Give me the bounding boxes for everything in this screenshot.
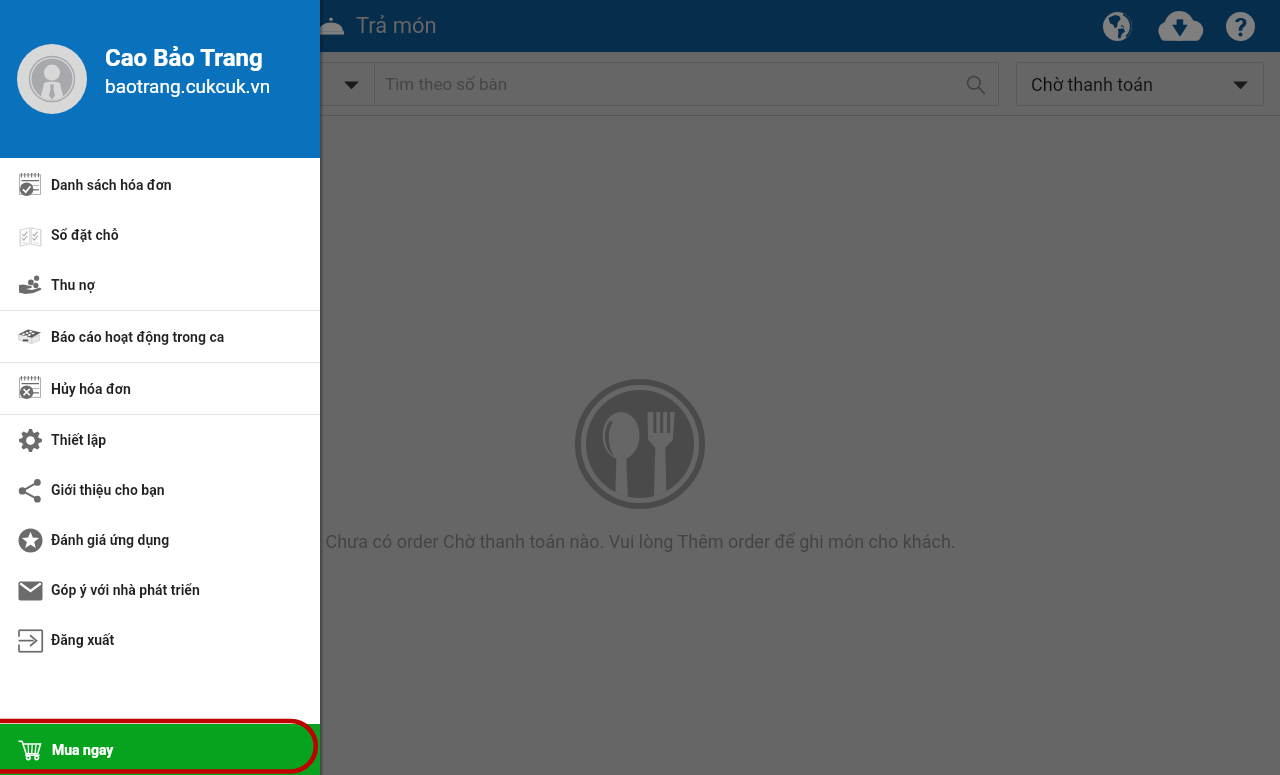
- button[interactable]: Help: [1214, 0, 1266, 52]
- staticText: Mua ngay: [52, 742, 114, 758]
- staticText: Danh sách hóa đơn: [51, 177, 172, 193]
- button[interactable]: Mua ngay: [0, 724, 320, 775]
- staticText: Hủy hóa đơn: [51, 381, 131, 397]
- button[interactable]: Sổ đặt chỗ: [0, 210, 320, 260]
- staticText: Thiết lập: [51, 432, 107, 448]
- staticText: Chờ thanh toán: [1031, 74, 1154, 95]
- button[interactable]: Download: [1154, 0, 1206, 52]
- button[interactable]: Đánh giá ứng dụng: [0, 515, 320, 565]
- staticText: Góp ý với nhà phát triển: [51, 582, 200, 598]
- staticText: Đánh giá ứng dụng: [51, 532, 170, 548]
- staticText: Thu nợ: [51, 277, 95, 293]
- button[interactable]: Báo cáo hoạt động trong ca: [0, 311, 320, 362]
- staticText: Đăng xuất: [51, 632, 115, 648]
- staticText: Chưa có order Chờ thanh toán nào. Vui lò…: [325, 531, 956, 552]
- button[interactable]: Language: [1091, 0, 1143, 52]
- staticText: Tìm theo số bàn: [385, 74, 508, 94]
- staticText: Sổ đặt chỗ: [51, 227, 119, 243]
- button[interactable]: Thu nợ: [0, 260, 320, 310]
- button[interactable]: Đăng xuất: [0, 615, 320, 665]
- staticText: Giới thiệu cho bạn: [51, 482, 165, 498]
- staticText: Báo cáo hoạt động trong ca: [51, 329, 225, 345]
- staticText: baotrang.cukcuk.vn: [105, 75, 271, 97]
- button[interactable]: Tìm theo số bàn: [16, 62, 999, 106]
- button[interactable]: Thiết lập: [0, 415, 320, 465]
- button[interactable]: Giới thiệu cho bạn: [0, 465, 320, 515]
- button[interactable]: Hủy hóa đơn: [0, 363, 320, 414]
- button[interactable]: Góp ý với nhà phát triển: [0, 565, 320, 615]
- staticText: Cao Bảo Trang: [105, 44, 263, 72]
- button[interactable]: Danh sách hóa đơn: [0, 160, 320, 210]
- button[interactable]: Chờ thanh toán: [1016, 62, 1264, 106]
- staticText: Trả món: [356, 13, 437, 39]
